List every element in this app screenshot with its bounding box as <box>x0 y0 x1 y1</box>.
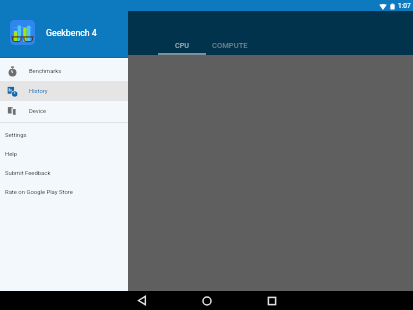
button[interactable]: COMPUTE <box>206 25 254 55</box>
button[interactable]: CPU <box>158 25 206 55</box>
staticText: Rate on Google Play Store <box>5 189 73 196</box>
button[interactable]: Back <box>132 291 151 310</box>
staticText: Benchmarks <box>29 68 62 75</box>
button[interactable]: Device <box>0 101 128 121</box>
staticText: History <box>29 88 48 95</box>
button[interactable]: Home <box>197 291 216 310</box>
button[interactable]: Benchmarks <box>0 61 128 81</box>
staticText: Submit Feedback <box>5 170 51 177</box>
button[interactable]: History <box>0 81 128 101</box>
staticText: CPU <box>175 41 189 49</box>
staticText: 1:07 <box>398 2 411 10</box>
button[interactable]: Recent apps <box>262 291 281 310</box>
button[interactable]: Settings <box>0 126 128 145</box>
button[interactable]: Help <box>0 145 128 164</box>
staticText: Settings <box>5 132 27 139</box>
staticText: COMPUTE <box>212 41 248 50</box>
button[interactable]: Rate on Google Play Store <box>0 183 128 202</box>
button[interactable]: Submit Feedback <box>0 164 128 183</box>
staticText: Geekbench 4 <box>46 28 97 38</box>
staticText: Device <box>29 108 47 115</box>
staticText: Help <box>5 151 18 158</box>
